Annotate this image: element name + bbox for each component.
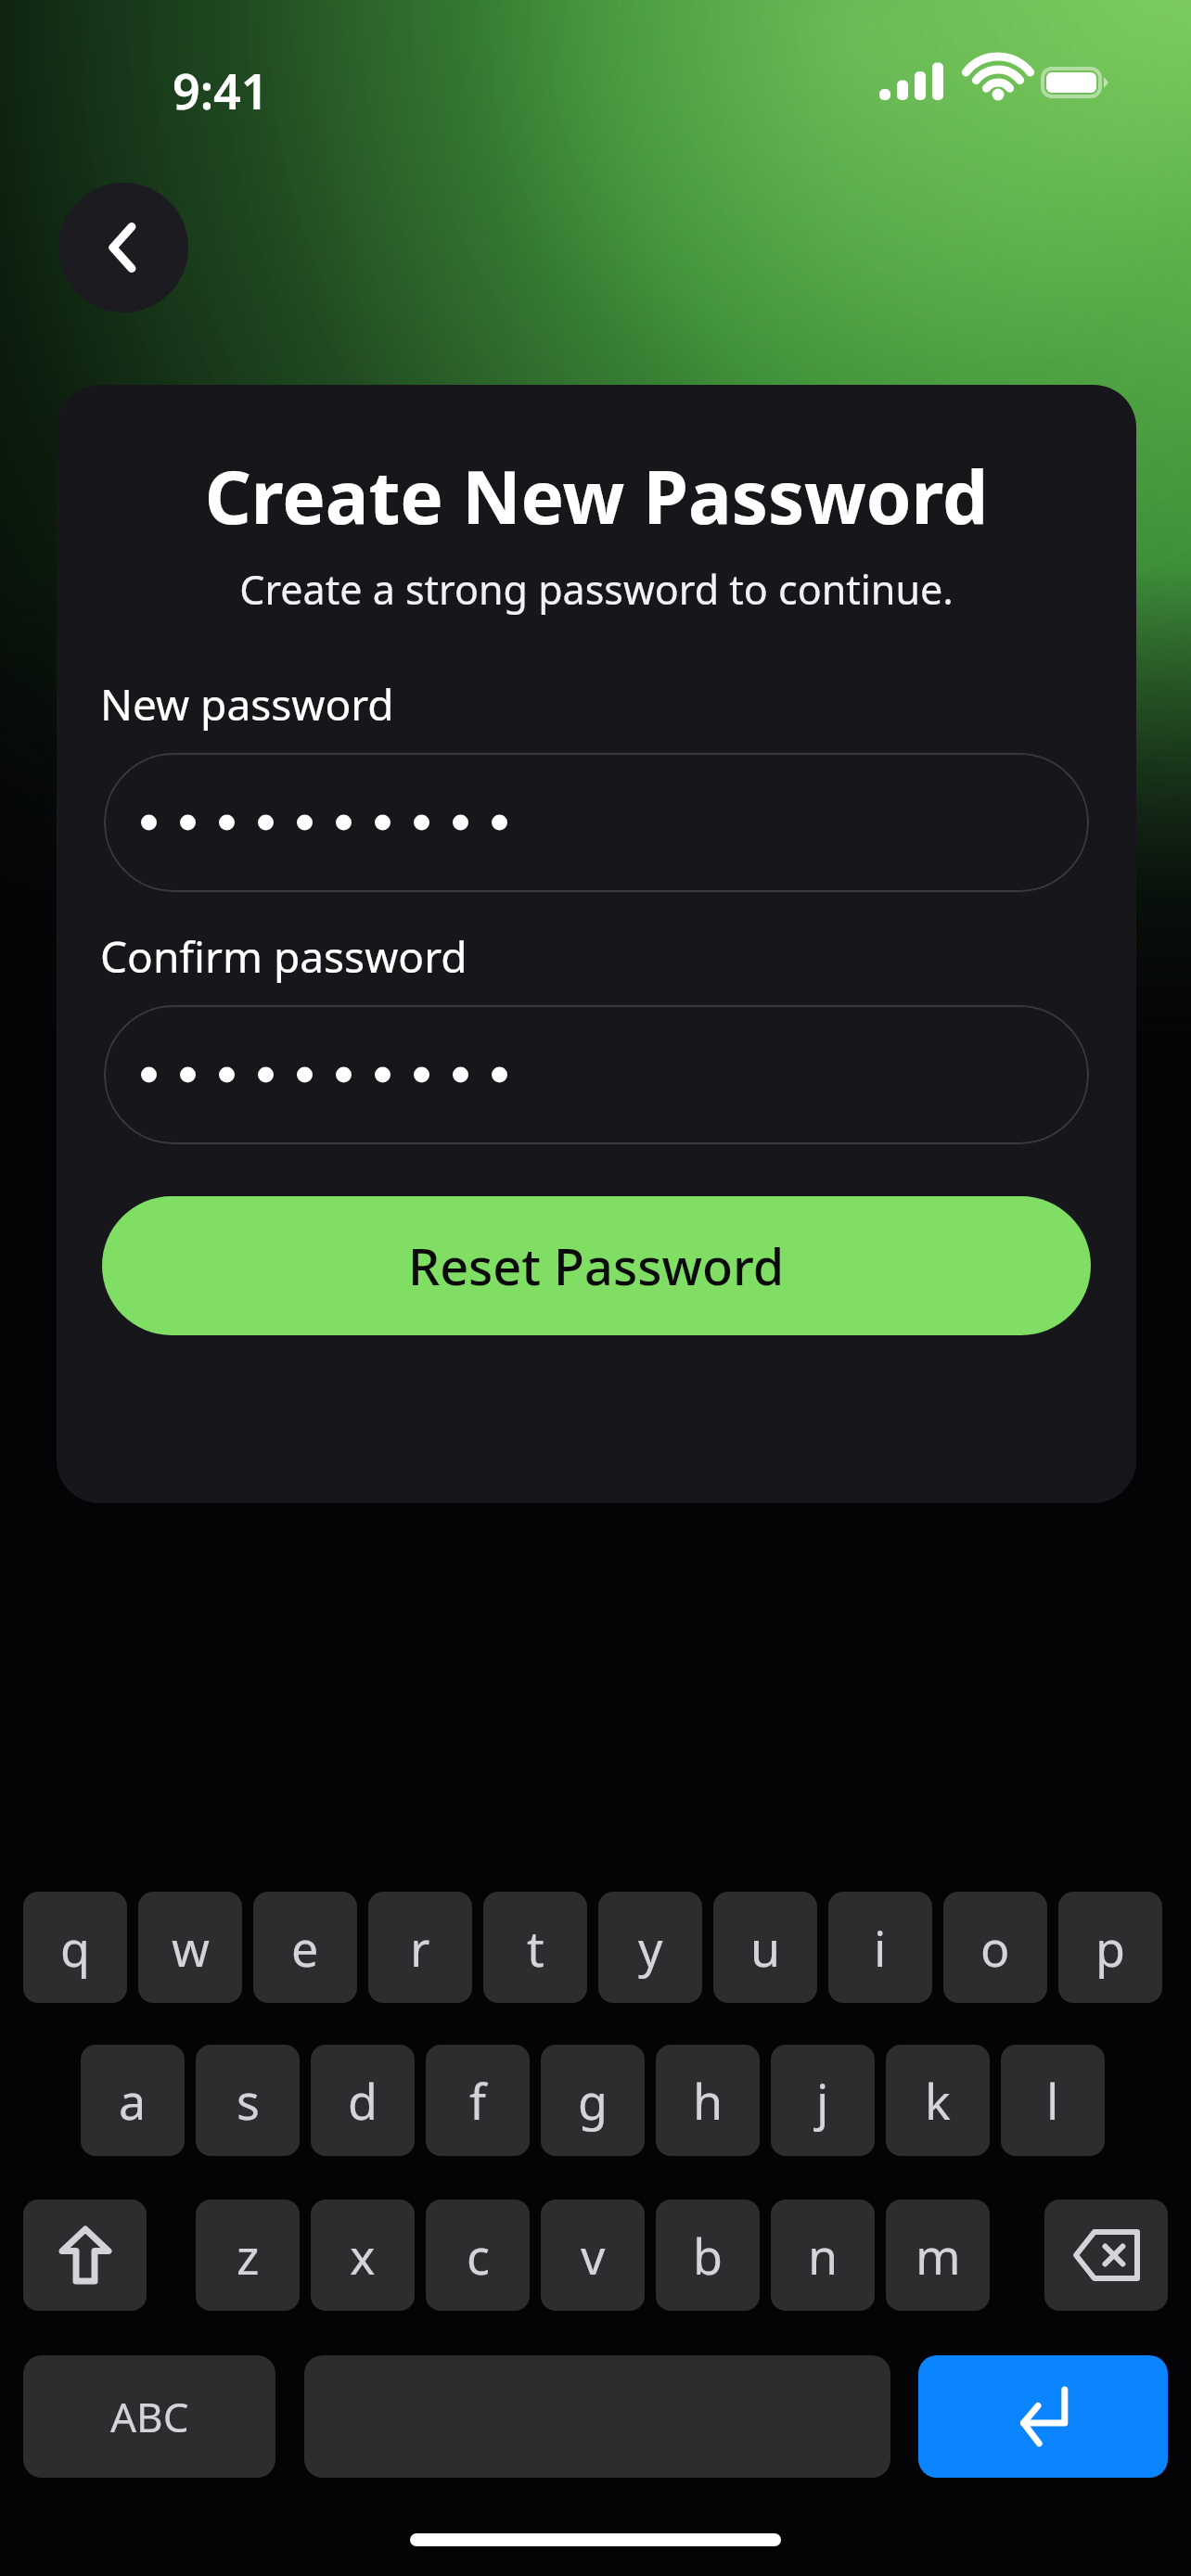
staticText: i (874, 1915, 887, 1981)
staticText: g (578, 2068, 608, 2134)
staticText: d (348, 2068, 378, 2134)
staticText: New password (100, 675, 394, 733)
staticText: n (808, 2223, 839, 2289)
staticText: ABC (110, 2389, 189, 2444)
button[interactable]: u (713, 1892, 817, 2003)
button[interactable]: a (81, 2045, 185, 2156)
button[interactable] (104, 753, 1089, 892)
button[interactable]: f (426, 2045, 530, 2156)
button[interactable]: ABC (23, 2355, 275, 2478)
staticText: 9:41 (173, 57, 269, 123)
button[interactable]: w (138, 1892, 242, 2003)
staticText: h (693, 2068, 724, 2134)
staticText: e (291, 1915, 319, 1981)
staticText: f (469, 2068, 486, 2134)
button[interactable]: n (771, 2200, 875, 2311)
button[interactable]: r (368, 1892, 472, 2003)
staticText: k (925, 2068, 951, 2134)
button[interactable]: i (828, 1892, 932, 2003)
staticText: t (527, 1915, 544, 1981)
staticText: a (119, 2068, 147, 2134)
button[interactable]: Back (58, 183, 188, 312)
button[interactable]: t (483, 1892, 587, 2003)
staticText: u (750, 1915, 781, 1981)
button[interactable]: z (196, 2200, 300, 2311)
button[interactable]: h (656, 2045, 760, 2156)
staticText: v (581, 2223, 606, 2289)
button[interactable] (104, 1005, 1089, 1144)
button[interactable]: y (598, 1892, 702, 2003)
button[interactable]: Return (918, 2355, 1168, 2478)
button[interactable]: q (23, 1892, 127, 2003)
staticText: y (638, 1915, 663, 1981)
button[interactable]: j (771, 2045, 875, 2156)
button[interactable]: o (943, 1892, 1047, 2003)
staticText: j (816, 2068, 829, 2134)
button[interactable]: Shift (23, 2200, 147, 2311)
button[interactable]: e (253, 1892, 357, 2003)
button[interactable]: d (311, 2045, 415, 2156)
button[interactable]: Reset Password (102, 1196, 1091, 1335)
button[interactable]: Backspace (1044, 2200, 1168, 2311)
button[interactable]: s (196, 2045, 300, 2156)
staticText: w (172, 1915, 210, 1981)
button[interactable]: l (1001, 2045, 1105, 2156)
staticText: c (467, 2223, 490, 2289)
staticText: r (410, 1915, 430, 1981)
staticText: Create a strong password to continue. (57, 562, 1136, 617)
staticText: s (237, 2068, 260, 2134)
staticText: Create New Password (57, 447, 1136, 545)
staticText: x (350, 2223, 376, 2289)
staticText: Reset Password (408, 1231, 785, 1300)
staticText: Confirm password (100, 927, 467, 986)
button[interactable]: x (311, 2200, 415, 2311)
button[interactable]: b (656, 2200, 760, 2311)
staticText: q (60, 1915, 90, 1981)
button[interactable]: g (541, 2045, 645, 2156)
button[interactable]: Space (304, 2355, 890, 2478)
staticText: m (916, 2223, 961, 2289)
staticText: z (237, 2223, 260, 2289)
button[interactable]: c (426, 2200, 530, 2311)
button[interactable]: m (886, 2200, 990, 2311)
button[interactable]: p (1058, 1892, 1162, 2003)
button[interactable]: k (886, 2045, 990, 2156)
staticText: l (1046, 2068, 1059, 2134)
staticText: o (980, 1915, 1010, 1981)
staticText: b (693, 2223, 723, 2289)
button[interactable]: v (541, 2200, 645, 2311)
staticText: p (1095, 1915, 1125, 1981)
